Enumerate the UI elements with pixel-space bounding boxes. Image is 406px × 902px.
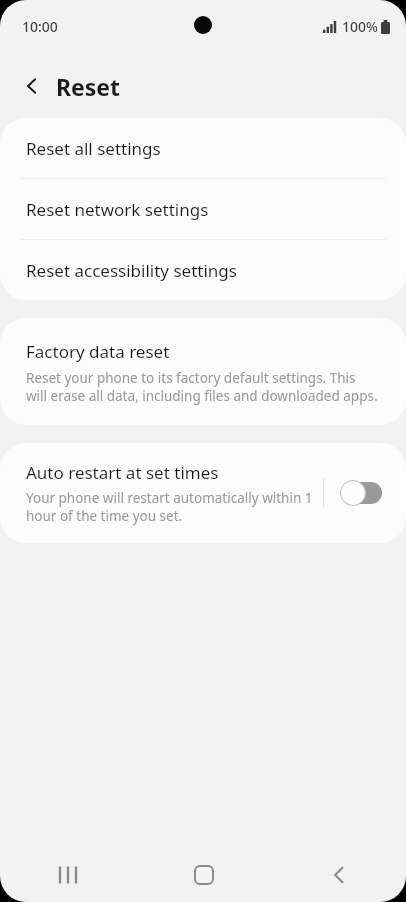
staticText: Reset — [56, 71, 121, 102]
staticText: Auto restart at set times — [26, 461, 219, 484]
button[interactable]: Reset accessibility settings — [0, 240, 406, 300]
button[interactable]: Home — [136, 848, 271, 902]
button[interactable]: Auto restart at set times — [0, 443, 323, 543]
staticText: Your phone will restart automatically wi… — [26, 489, 313, 525]
staticText: Reset network settings — [26, 198, 209, 221]
button[interactable]: Recent apps — [0, 848, 136, 902]
button[interactable]: Factory data reset — [0, 318, 406, 425]
staticText: Reset all settings — [26, 137, 161, 160]
staticText: Reset accessibility settings — [26, 259, 237, 282]
staticText: 100% — [342, 17, 378, 36]
button[interactable]: Back — [14, 68, 50, 104]
button[interactable]: Reset network settings — [0, 179, 406, 239]
staticText: Reset your phone to its factory default … — [26, 369, 378, 405]
button[interactable]: Auto restart at set times toggle — [334, 471, 390, 515]
staticText: 10:00 — [22, 17, 58, 36]
staticText: Factory data reset — [26, 340, 170, 363]
button[interactable]: Back — [271, 848, 406, 902]
button[interactable]: Reset all settings — [0, 118, 406, 178]
